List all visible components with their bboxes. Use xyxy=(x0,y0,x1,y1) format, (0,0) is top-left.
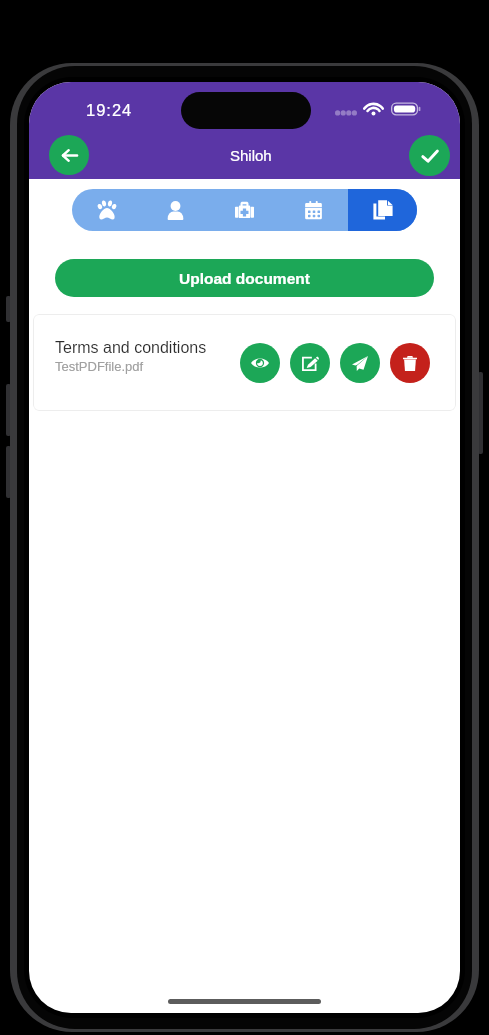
button[interactable]: Documents xyxy=(348,189,417,231)
button[interactable]: Calendar xyxy=(279,189,348,231)
button[interactable]: Owner xyxy=(141,189,210,231)
staticText: Shiloh xyxy=(230,147,272,164)
button[interactable]: View xyxy=(240,343,280,383)
button[interactable]: Delete xyxy=(390,343,430,383)
button[interactable]: Upload document xyxy=(55,259,434,297)
button[interactable]: Pets xyxy=(72,189,141,231)
staticText: TestPDFfile.pdf xyxy=(55,359,144,374)
button[interactable]: Send xyxy=(340,343,380,383)
button[interactable]: Confirm xyxy=(409,135,450,176)
button[interactable]: Back xyxy=(49,135,89,175)
staticText: 19:24 xyxy=(86,101,133,119)
staticText: Upload document xyxy=(179,270,310,287)
staticText: Terms and conditions xyxy=(55,339,207,357)
button[interactable]: Terms and conditions xyxy=(33,314,456,411)
button[interactable]: Medical xyxy=(210,189,279,231)
button[interactable]: Edit xyxy=(290,343,330,383)
